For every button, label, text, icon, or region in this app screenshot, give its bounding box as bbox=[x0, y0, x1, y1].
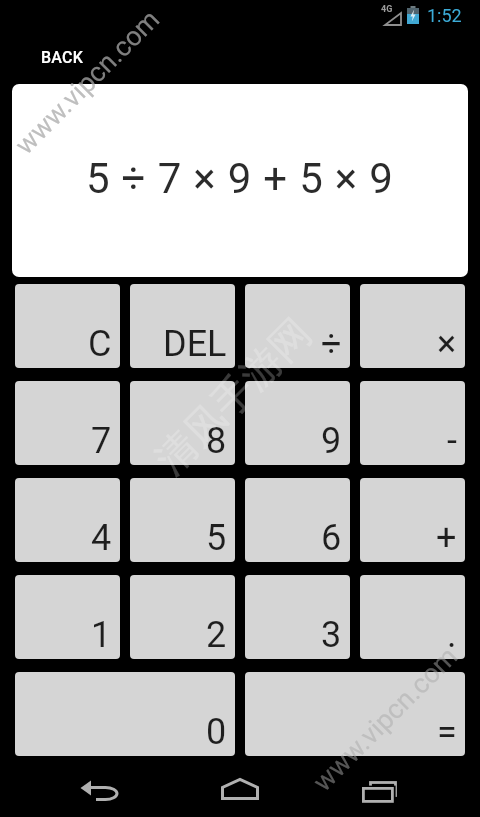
staticText: 0 bbox=[206, 711, 227, 753]
button[interactable] bbox=[358, 774, 398, 802]
staticText: C bbox=[88, 323, 112, 365]
button[interactable]: ÷ bbox=[245, 284, 350, 368]
staticText: 清风手游网 bbox=[145, 308, 321, 484]
button[interactable]: C bbox=[15, 284, 120, 368]
staticText: 2 bbox=[206, 614, 227, 656]
staticText: 5 bbox=[206, 517, 227, 559]
button[interactable]: 8 bbox=[130, 381, 235, 465]
staticText: ÷ bbox=[321, 323, 342, 365]
staticText: DEL bbox=[163, 323, 227, 365]
button[interactable]: 7 bbox=[15, 381, 120, 465]
button[interactable]: 2 bbox=[130, 575, 235, 659]
staticText: 4G bbox=[381, 4, 393, 15]
button[interactable]: 1 bbox=[15, 575, 120, 659]
staticText: BACK bbox=[41, 48, 83, 67]
staticText: 9 bbox=[321, 420, 342, 462]
button[interactable] bbox=[79, 774, 119, 802]
staticText: 1:52 bbox=[427, 5, 462, 26]
staticText: + bbox=[436, 517, 457, 559]
staticText: = bbox=[437, 711, 457, 753]
button[interactable] bbox=[220, 774, 260, 802]
button[interactable]: 4 bbox=[15, 478, 120, 562]
staticText: 5 ÷ 7 × 9 + 5 × 9 bbox=[86, 154, 394, 203]
button[interactable]: BACK bbox=[30, 40, 94, 75]
staticText: × bbox=[437, 323, 457, 365]
button[interactable]: 3 bbox=[245, 575, 350, 659]
button[interactable]: - bbox=[360, 381, 465, 465]
button[interactable]: = bbox=[245, 672, 465, 756]
button[interactable]: 0 bbox=[15, 672, 235, 756]
staticText: 3 bbox=[321, 614, 342, 656]
staticText: - bbox=[447, 420, 457, 462]
staticText: 8 bbox=[206, 420, 227, 462]
button[interactable]: + bbox=[360, 478, 465, 562]
button[interactable]: DEL bbox=[130, 284, 235, 368]
button[interactable]: . bbox=[360, 575, 465, 659]
button[interactable]: 9 bbox=[245, 381, 350, 465]
staticText: 1 bbox=[91, 614, 112, 656]
button[interactable]: × bbox=[360, 284, 465, 368]
staticText: . bbox=[447, 614, 457, 656]
staticText: 7 bbox=[91, 420, 112, 462]
staticText: www.vipcn.com bbox=[9, 3, 166, 161]
staticText: www.vipcn.com bbox=[307, 640, 464, 798]
button[interactable]: 6 bbox=[245, 478, 350, 562]
button[interactable]: 5 bbox=[130, 478, 235, 562]
staticText: 6 bbox=[321, 517, 342, 559]
staticText: 4 bbox=[91, 517, 112, 559]
